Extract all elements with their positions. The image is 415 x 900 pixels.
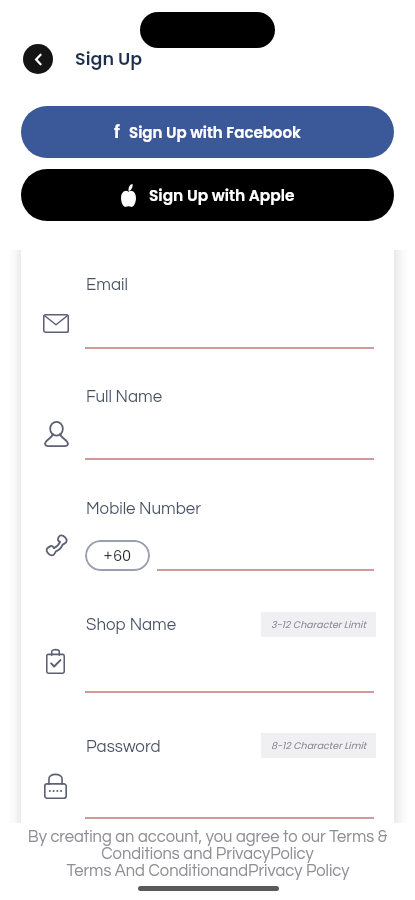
- staticText: Sign Up with Facebook: [129, 122, 301, 143]
- staticText: Mobile Number: [86, 500, 202, 517]
- staticText: Shop Name: [86, 616, 177, 633]
- staticText: Email: [86, 276, 128, 293]
- staticText: Password: [86, 738, 161, 755]
- staticText: Terms And ConditionandPrivacy Policy: [66, 862, 350, 879]
- button[interactable]: f: [21, 106, 394, 158]
- staticText: 3-12 Character Limit: [271, 618, 366, 631]
- button[interactable]: Sign Up with Apple: [21, 169, 394, 221]
- staticText: f: [114, 120, 120, 144]
- button[interactable]: Back: [23, 44, 53, 74]
- staticText: +60: [103, 546, 132, 566]
- staticText: Sign Up with Apple: [149, 185, 295, 207]
- staticText: Sign Up: [75, 47, 143, 72]
- staticText: By creating an account, you agree to our…: [25, 828, 390, 862]
- staticText: 8-12 Character Limit: [271, 739, 367, 752]
- button[interactable]: +60: [85, 540, 150, 571]
- staticText: Full Name: [86, 388, 163, 405]
